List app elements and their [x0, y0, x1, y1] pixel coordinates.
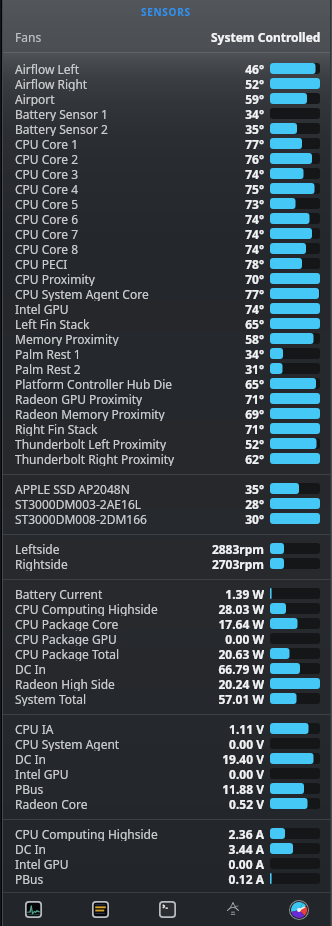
button[interactable]: Archive Utility: [200, 893, 266, 926]
button[interactable]: Right Fin Stack: [0, 421, 332, 436]
button[interactable]: Intel GPU: [0, 301, 332, 316]
staticText: 70°: [245, 271, 264, 286]
button[interactable]: Activity Monitor: [0, 893, 67, 926]
button[interactable]: Thunderbolt Left Proximity: [0, 436, 332, 451]
button[interactable]: Battery Sensor 1: [0, 106, 332, 121]
staticText: DC In: [15, 751, 46, 766]
staticText: CPU Package GPU: [15, 631, 117, 646]
button[interactable]: Airflow Left: [0, 61, 332, 76]
staticText: CPU System Agent Core: [15, 286, 149, 301]
staticText: Memory Proximity: [15, 331, 119, 346]
button[interactable]: Radeon Memory Proximity: [0, 406, 332, 421]
button[interactable]: Memory Proximity: [0, 331, 332, 346]
button[interactable]: CPU IA: [0, 721, 332, 736]
button[interactable]: CPU PECI: [0, 256, 332, 271]
button[interactable]: Battery Sensor 2: [0, 121, 332, 136]
button[interactable]: Radeon Core: [0, 796, 332, 811]
staticText: CPU PECI: [15, 256, 68, 271]
staticText: DC In: [15, 841, 46, 856]
staticText: CPU Core 5: [15, 196, 79, 211]
staticText: 0.52 V: [229, 796, 264, 811]
staticText: Airflow Right: [15, 76, 88, 91]
staticText: Intel GPU: [15, 766, 69, 781]
staticText: ST3000DM008-2DM166: [15, 511, 147, 526]
button[interactable]: CPU System Agent Core: [0, 286, 332, 301]
button[interactable]: CPU Core 2: [0, 151, 332, 166]
button[interactable]: Thunderbolt Right Proximity: [0, 451, 332, 466]
button[interactable]: CPU Core 3: [0, 166, 332, 181]
staticText: ST3000DM003-2AE16L: [15, 496, 142, 511]
staticText: 52°: [245, 76, 264, 91]
button[interactable]: CPU Package Core: [0, 616, 332, 631]
button[interactable]: APPLE SSD AP2048N: [0, 481, 332, 496]
staticText: 28.03 W: [218, 601, 264, 616]
button[interactable]: Airport: [0, 91, 332, 106]
staticText: 20.63 W: [218, 646, 264, 661]
button[interactable]: Battery Current: [0, 586, 332, 601]
button[interactable]: Platform Controller Hub Die: [0, 376, 332, 391]
staticText: CPU System Agent: [15, 736, 120, 751]
staticText: 31°: [245, 361, 264, 376]
staticText: 20.24 W: [218, 676, 264, 691]
staticText: 0.00 W: [225, 631, 264, 646]
staticText: Battery Sensor 1: [15, 106, 108, 121]
staticText: 62°: [245, 451, 264, 466]
button[interactable]: CPU Core 8: [0, 241, 332, 256]
button[interactable]: Terminal: [134, 893, 200, 926]
button[interactable]: CPU Package Total: [0, 646, 332, 661]
staticText: 74°: [245, 226, 264, 241]
button[interactable]: CPU Core 1: [0, 136, 332, 151]
button[interactable]: PBus: [0, 871, 332, 886]
button[interactable]: DC In: [0, 661, 332, 676]
button[interactable]: Airflow Right: [0, 76, 332, 91]
staticText: Right Fin Stack: [15, 421, 98, 436]
button[interactable]: Leftside: [0, 541, 332, 556]
button[interactable]: DC In: [0, 751, 332, 766]
button[interactable]: Palm Rest 1: [0, 346, 332, 361]
staticText: 0.00 V: [229, 766, 264, 781]
button[interactable]: CPU Package GPU: [0, 631, 332, 646]
button[interactable]: PBus: [0, 781, 332, 796]
staticText: Palm Rest 1: [15, 346, 81, 361]
button[interactable]: DC In: [0, 841, 332, 856]
staticText: Leftside: [15, 541, 60, 556]
staticText: CPU Core 7: [15, 226, 79, 241]
staticText: 2883rpm: [211, 541, 264, 556]
button[interactable]: CPU Computing Highside: [0, 601, 332, 616]
button[interactable]: CPU Proximity: [0, 271, 332, 286]
staticText: 35°: [245, 121, 264, 136]
button[interactable]: CPU Core 7: [0, 226, 332, 241]
button[interactable]: Radeon GPU Proximity: [0, 391, 332, 406]
button[interactable]: ST3000DM003-2AE16L: [0, 496, 332, 511]
button[interactable]: iStat Menus: [266, 893, 332, 926]
button[interactable]: Intel GPU: [0, 856, 332, 871]
staticText: 0.00 V: [229, 736, 264, 751]
button[interactable]: CPU System Agent: [0, 736, 332, 751]
staticText: 76°: [245, 151, 264, 166]
button[interactable]: Intel GPU: [0, 766, 332, 781]
staticText: 2.36 A: [228, 826, 264, 841]
button[interactable]: CPU Core 6: [0, 211, 332, 226]
button[interactable]: System Total: [0, 691, 332, 706]
button[interactable]: Rightside: [0, 556, 332, 571]
staticText: 58°: [245, 331, 264, 346]
staticText: 1.39 W: [225, 586, 264, 601]
staticText: Radeon Core: [15, 796, 88, 811]
staticText: Battery Sensor 2: [15, 121, 108, 136]
staticText: 73°: [245, 196, 264, 211]
staticText: 17.64 W: [218, 616, 264, 631]
staticText: 74°: [245, 211, 264, 226]
button[interactable]: Radeon High Side: [0, 676, 332, 691]
staticText: 46°: [245, 61, 264, 76]
button[interactable]: ST3000DM008-2DM166: [0, 511, 332, 526]
button[interactable]: CPU Core 5: [0, 196, 332, 211]
staticText: DC In: [15, 661, 46, 676]
button[interactable]: CPU Core 4: [0, 181, 332, 196]
staticText: CPU Computing Highside: [15, 826, 158, 841]
button[interactable]: Palm Rest 2: [0, 361, 332, 376]
button[interactable]: Console: [67, 893, 134, 926]
staticText: CPU Core 6: [15, 211, 79, 226]
button[interactable]: CPU Computing Highside: [0, 826, 332, 841]
button[interactable]: Left Fin Stack: [0, 316, 332, 331]
staticText: 74°: [245, 301, 264, 316]
